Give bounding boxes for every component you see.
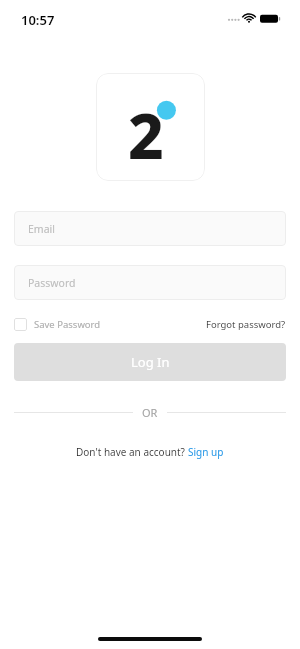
staticText: Password [28, 276, 76, 290]
button[interactable]: Forgot password? [206, 316, 286, 333]
button[interactable]: Log In [14, 343, 286, 381]
staticText: 2 [128, 93, 164, 163]
button[interactable]: Email [14, 211, 286, 246]
button[interactable]: Sign up [188, 445, 224, 459]
staticText: Forgot password? [206, 318, 286, 331]
staticText: Don't have an account? [76, 445, 188, 459]
button[interactable]: Save Password [14, 316, 101, 333]
staticText: Save Password [34, 318, 101, 331]
staticText: Sign up [188, 445, 224, 459]
staticText: 10:57 [21, 11, 55, 29]
staticText: Email [28, 222, 55, 236]
button[interactable]: Password [14, 265, 286, 300]
staticText: OR [142, 405, 158, 419]
other: App logo [96, 73, 205, 181]
staticText: Log In [131, 353, 170, 371]
